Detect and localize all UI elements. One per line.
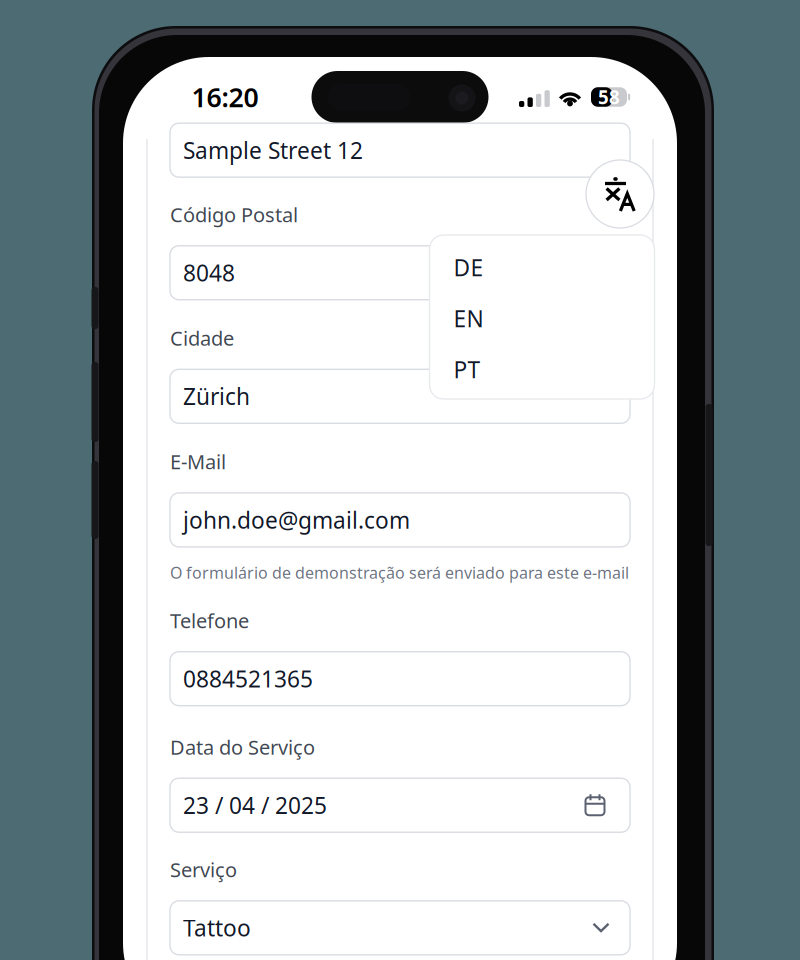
staticText: 58 <box>598 85 620 109</box>
staticText: E-Mail <box>170 448 226 475</box>
staticText: PT <box>453 354 480 384</box>
button[interactable]: Tattoo <box>170 901 630 955</box>
staticText: Serviço <box>170 856 237 883</box>
staticText: EN <box>453 303 483 333</box>
staticText: Data do Serviço <box>170 734 315 760</box>
button[interactable]: Translate <box>586 160 654 228</box>
staticText: DE <box>453 252 483 282</box>
staticText: Cidade <box>170 325 234 351</box>
button[interactable]: PT <box>429 344 654 395</box>
staticText: 8048 <box>183 258 235 288</box>
button[interactable]: Sample Street 12 <box>170 123 630 177</box>
button[interactable]: DE <box>429 242 654 293</box>
staticText: 23 / 04 / 2025 <box>183 790 327 820</box>
staticText: Tattoo <box>183 913 251 943</box>
button[interactable]: 0884521365 <box>170 652 630 706</box>
button[interactable]: EN <box>429 293 654 344</box>
staticText: O formulário de demonstração será enviad… <box>170 562 629 583</box>
staticText: 0884521365 <box>183 664 313 694</box>
staticText: 16:20 <box>191 79 258 115</box>
button[interactable]: john.doe@gmail.com <box>170 493 630 547</box>
staticText: Zürich <box>183 381 250 411</box>
button[interactable]: 8048 <box>170 246 630 300</box>
staticText: Telefone <box>170 607 249 634</box>
button[interactable]: Zürich <box>170 369 630 423</box>
staticText: Sample Street 12 <box>183 135 363 165</box>
button[interactable]: 23 / 04 / 2025 <box>170 778 630 832</box>
staticText: Código Postal <box>170 201 298 228</box>
staticText: john.doe@gmail.com <box>183 505 410 535</box>
